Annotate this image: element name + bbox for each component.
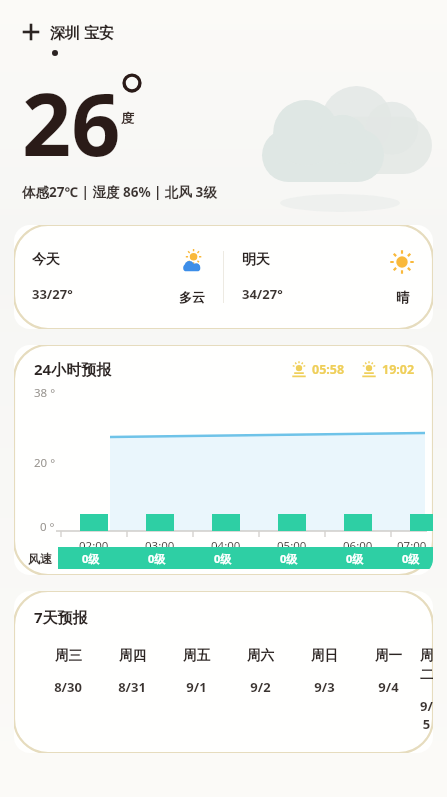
button[interactable]: 周一 [356,647,420,696]
staticText: 19:02 [382,361,415,378]
staticText: 26 [22,64,121,181]
staticText: 0级 [346,551,364,566]
staticText: 24小时预报 [34,359,112,379]
staticText: 深圳 宝安 [50,22,114,42]
staticText: 7天预报 [34,607,88,627]
staticText: 晴 [396,289,409,305]
staticText: 周三 [55,647,82,664]
button[interactable]: 周日 [292,647,356,696]
button[interactable]: 周二 [420,647,433,733]
staticText: 度 [121,110,134,126]
staticText: 9/4 [378,678,399,696]
staticText: 07:00 [397,538,427,554]
staticText: 34/27° [242,285,283,303]
staticText: 0级 [214,551,232,566]
button[interactable]: 明天 [224,225,433,329]
staticText: 周日 [311,647,338,664]
staticText: 38 ° [34,385,56,401]
staticText: 体感27℃ | 湿度 86% | 北风 3级 [22,183,217,201]
staticText: 9/1 [186,678,207,696]
staticText: 今天 [32,251,60,269]
staticText: 8/31 [118,678,146,696]
staticText: 0级 [402,551,420,566]
staticText: 20 ° [34,455,56,471]
staticText: 0级 [280,551,298,566]
staticText: 9/5 [420,697,433,733]
staticText: 周六 [247,647,274,664]
staticText: 9/2 [250,678,271,696]
button[interactable]: 周三 [36,647,100,696]
staticText: 明天 [242,251,270,269]
button[interactable]: 周四 [100,647,164,696]
staticText: 周四 [119,647,146,664]
button[interactable]: Add city [20,20,116,44]
staticText: 06:00 [343,538,373,554]
staticText: 周二 [420,647,433,683]
staticText: 0 ° [40,519,55,535]
other: Add city [22,23,40,41]
staticText: 0级 [82,551,100,566]
staticText: 周一 [375,647,402,664]
staticText: 风速 [28,551,52,566]
other: Sunrise [291,362,307,378]
staticText: 05:58 [312,361,345,378]
button[interactable]: 24小时预报 [14,345,433,575]
button[interactable]: 7天预报 [14,591,433,753]
button[interactable]: 今天 [14,225,433,329]
staticText: 9/3 [314,678,335,696]
button[interactable]: 今天 [14,225,223,329]
staticText: 05:00 [277,538,307,554]
staticText: 多云 [179,289,205,305]
staticText: 33/27° [32,285,73,303]
staticText: 8/30 [54,678,82,696]
button[interactable]: 周五 [164,647,228,696]
button[interactable]: 周六 [228,647,292,696]
staticText: 04:00 [211,538,241,554]
staticText: 03:00 [145,538,175,554]
other: Sunset [361,362,377,378]
staticText: 周五 [183,647,210,664]
staticText: 0级 [148,551,166,566]
staticText: 02:00 [79,538,109,554]
